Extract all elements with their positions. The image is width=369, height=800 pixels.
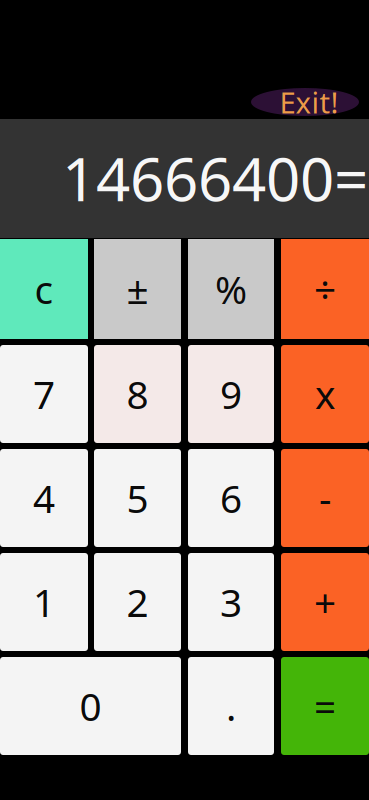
staticText: 9 xyxy=(220,368,242,420)
staticText: 1 xyxy=(33,576,55,628)
staticText: 14666400= xyxy=(62,138,368,218)
button[interactable]: 0 xyxy=(0,657,181,755)
button[interactable]: 3 xyxy=(188,553,274,651)
staticText: x xyxy=(315,368,335,420)
button[interactable]: c xyxy=(0,239,88,339)
staticText: c xyxy=(34,263,53,315)
button[interactable]: 1 xyxy=(0,553,88,651)
staticText: = xyxy=(314,680,336,732)
button[interactable]: 5 xyxy=(94,449,181,547)
button[interactable]: = xyxy=(281,657,369,755)
staticText: 6 xyxy=(220,472,242,524)
staticText: . xyxy=(226,680,236,732)
button[interactable]: - xyxy=(281,449,369,547)
staticText: 3 xyxy=(220,576,242,628)
button[interactable]: 4 xyxy=(0,449,88,547)
button[interactable]: ± xyxy=(94,239,181,339)
button[interactable]: 7 xyxy=(0,345,88,443)
staticText: 7 xyxy=(33,368,55,420)
staticText: ÷ xyxy=(314,263,336,315)
staticText: 5 xyxy=(126,472,148,524)
button[interactable]: 8 xyxy=(94,345,181,443)
button[interactable]: 9 xyxy=(188,345,274,443)
staticText: - xyxy=(319,472,331,524)
button[interactable]: 6 xyxy=(188,449,274,547)
staticText: 8 xyxy=(126,368,148,420)
button[interactable]: x xyxy=(281,345,369,443)
button[interactable]: . xyxy=(188,657,274,755)
staticText: Exit! xyxy=(279,82,338,121)
button[interactable]: Exit! xyxy=(251,88,359,116)
staticText: + xyxy=(314,576,336,628)
button[interactable]: % xyxy=(188,239,274,339)
button[interactable]: 2 xyxy=(94,553,181,651)
staticText: 4 xyxy=(33,472,55,524)
staticText: 2 xyxy=(126,576,148,628)
staticText: % xyxy=(215,263,247,315)
button[interactable]: + xyxy=(281,553,369,651)
button[interactable]: ÷ xyxy=(281,239,369,339)
staticText: ± xyxy=(126,263,148,315)
staticText: 0 xyxy=(79,680,101,732)
